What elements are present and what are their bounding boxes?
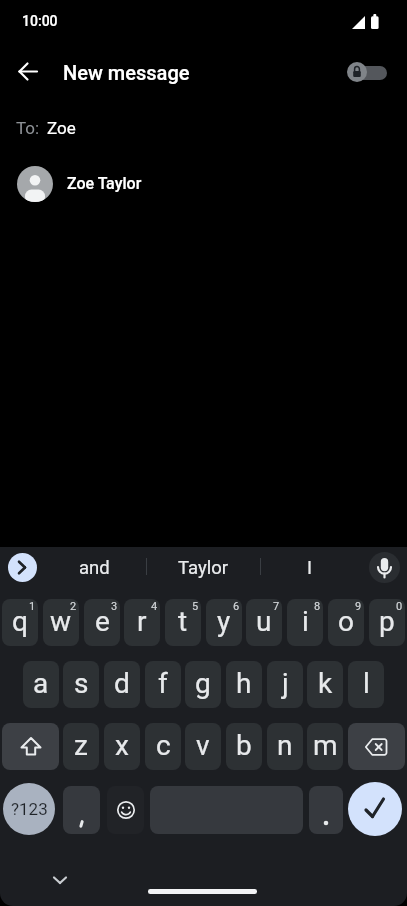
staticText: 7 <box>273 600 280 613</box>
staticText: t <box>178 605 188 638</box>
staticText: 8 <box>314 600 321 613</box>
button[interactable] <box>63 786 100 834</box>
staticText: k <box>318 667 333 700</box>
staticText: Taylor <box>178 557 229 579</box>
staticText: 0 <box>396 600 403 613</box>
staticText: To: <box>16 118 40 138</box>
staticText: w <box>50 605 72 638</box>
staticText: Zoe <box>47 118 76 138</box>
staticText: m <box>313 729 338 762</box>
button[interactable]: f <box>145 661 181 708</box>
staticText: 9 <box>355 600 362 613</box>
button[interactable]: x <box>104 723 140 770</box>
button[interactable]: w <box>43 599 79 646</box>
staticText: j <box>282 667 289 700</box>
staticText: e <box>95 605 110 638</box>
button[interactable]: q <box>2 599 38 646</box>
button[interactable]: z <box>63 723 99 770</box>
button[interactable]: i <box>287 599 323 646</box>
staticText: s <box>74 667 89 700</box>
button[interactable]: e <box>84 599 120 646</box>
button[interactable] <box>107 786 144 834</box>
button[interactable]: t <box>165 599 201 646</box>
button[interactable]: h <box>226 661 262 708</box>
staticText: z <box>74 729 88 762</box>
staticText: 10:00 <box>22 13 58 29</box>
button[interactable] <box>369 552 400 583</box>
button[interactable]: and <box>48 551 140 584</box>
staticText: i <box>302 605 309 638</box>
staticText: x <box>115 729 129 762</box>
button[interactable]: k <box>307 661 343 708</box>
button[interactable]: v <box>185 723 221 770</box>
staticText: n <box>277 729 293 762</box>
staticText: q <box>12 605 28 638</box>
button[interactable] <box>348 782 402 836</box>
staticText: v <box>196 729 210 762</box>
staticText: o <box>338 605 354 638</box>
staticText: 3 <box>111 600 118 613</box>
staticText: r <box>137 605 147 638</box>
button[interactable]: s <box>63 661 99 708</box>
staticText: h <box>236 667 252 700</box>
staticText: g <box>195 667 211 700</box>
button[interactable] <box>2 723 59 770</box>
button[interactable] <box>44 868 76 894</box>
button[interactable]: b <box>226 723 262 770</box>
staticText: 6 <box>233 600 240 613</box>
button[interactable]: u <box>246 599 282 646</box>
button[interactable]: ?123 <box>3 783 55 835</box>
button[interactable]: y <box>206 599 242 646</box>
staticText: l <box>363 667 370 700</box>
button[interactable]: p <box>369 599 405 646</box>
button[interactable]: a <box>23 661 59 708</box>
staticText: I <box>307 557 313 579</box>
button[interactable]: g <box>185 661 221 708</box>
staticText: f <box>158 667 168 700</box>
staticText: 1 <box>29 600 36 613</box>
staticText: p <box>379 605 395 638</box>
button[interactable]: l <box>348 661 384 708</box>
button[interactable]: r <box>124 599 160 646</box>
staticText: ?123 <box>11 799 48 819</box>
button[interactable]: c <box>145 723 181 770</box>
button[interactable] <box>12 58 44 88</box>
button[interactable] <box>347 62 387 82</box>
staticText: 5 <box>192 600 199 613</box>
staticText: d <box>114 667 130 700</box>
staticText: b <box>236 729 252 762</box>
button[interactable] <box>0 160 407 207</box>
button[interactable]: d <box>104 661 140 708</box>
button[interactable] <box>348 723 405 770</box>
button[interactable]: o <box>328 599 364 646</box>
staticText: 2 <box>70 600 77 613</box>
staticText: y <box>217 605 231 638</box>
button[interactable]: m <box>307 723 343 770</box>
button[interactable]: j <box>267 661 303 708</box>
staticText: c <box>156 729 171 762</box>
staticText: New message <box>63 61 190 84</box>
staticText: Zoe Taylor <box>67 174 142 193</box>
staticText: and <box>79 557 110 579</box>
button[interactable]: n <box>267 723 303 770</box>
staticText: u <box>256 605 272 638</box>
staticText: a <box>33 667 49 700</box>
button[interactable] <box>8 553 37 582</box>
button[interactable]: Taylor <box>152 551 254 584</box>
button[interactable] <box>309 786 343 834</box>
staticText: 4 <box>151 600 158 613</box>
button[interactable]: I <box>275 551 345 584</box>
